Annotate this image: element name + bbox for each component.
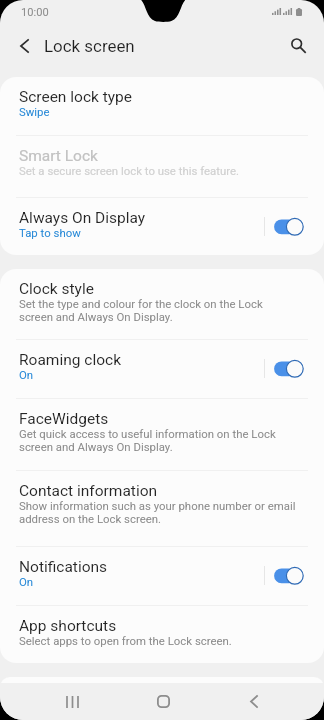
button[interactable]: Back xyxy=(232,683,276,720)
button[interactable]: Notifications xyxy=(0,547,324,606)
button[interactable]: Toggle Always On Display xyxy=(272,218,306,241)
staticText: Lock screen xyxy=(44,36,135,56)
staticText: Select apps to open from the Lock screen… xyxy=(19,634,232,647)
staticText: Clock style xyxy=(19,280,94,298)
button[interactable]: Navigate up xyxy=(8,29,41,62)
staticText: Contact information xyxy=(19,482,158,500)
staticText: On xyxy=(19,368,34,381)
staticText: Always On Display xyxy=(19,209,146,227)
button[interactable]: Always On Display xyxy=(0,198,324,255)
staticText: App shortcuts xyxy=(19,617,117,635)
button[interactable]: App shortcuts xyxy=(0,606,324,663)
staticText: Roaming clock xyxy=(19,351,121,369)
staticText: Set the type and colour for the clock on… xyxy=(19,297,263,324)
staticText: Tap to show xyxy=(19,226,81,239)
staticText: Swipe xyxy=(19,105,50,118)
staticText: Smart Lock xyxy=(19,147,98,165)
staticText: Get quick access to useful information o… xyxy=(19,427,276,454)
button[interactable]: Roaming clock xyxy=(0,340,324,399)
staticText: Notifications xyxy=(19,558,108,576)
button[interactable]: Clock style xyxy=(0,269,324,340)
staticText: 10:00 xyxy=(21,6,49,19)
staticText: On xyxy=(19,575,34,588)
staticText: Show information such as your phone numb… xyxy=(19,499,296,526)
button[interactable]: FaceWidgets xyxy=(0,399,324,471)
button[interactable]: Smart Lock xyxy=(0,136,324,198)
staticText: FaceWidgets xyxy=(19,410,109,428)
button[interactable]: Screen lock type xyxy=(0,77,324,136)
button[interactable]: Recent apps xyxy=(50,683,94,720)
button[interactable]: Home xyxy=(141,683,185,720)
button[interactable]: Contact information xyxy=(0,471,324,547)
staticText: Screen lock type xyxy=(19,88,133,106)
button[interactable]: Search xyxy=(281,29,314,62)
staticText: Set a secure screen lock to use this fea… xyxy=(19,164,240,177)
button[interactable]: Toggle Roaming clock xyxy=(272,360,306,383)
button[interactable]: Toggle Notifications xyxy=(272,567,306,590)
